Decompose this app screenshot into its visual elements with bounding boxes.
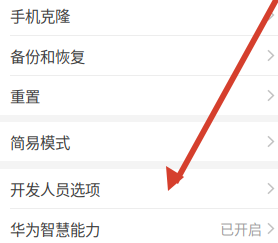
staticText: 已开启 [220, 218, 262, 239]
button[interactable]: 备份和恢复 [0, 36, 278, 75]
button[interactable]: 简易模式 [0, 122, 278, 161]
button[interactable]: 手机克隆 [0, 0, 278, 35]
staticText: 重置 [10, 84, 40, 107]
staticText: 开发人员选项 [10, 177, 100, 200]
staticText: 简易模式 [10, 130, 70, 153]
staticText: 备份和恢复 [10, 44, 85, 67]
button[interactable]: 开发人员选项 [0, 169, 278, 208]
button[interactable]: 华为智慧能力 [0, 209, 278, 243]
staticText: 手机克隆 [10, 4, 70, 26]
button[interactable]: 重置 [0, 76, 278, 115]
staticText: 华为智慧能力 [10, 217, 100, 240]
